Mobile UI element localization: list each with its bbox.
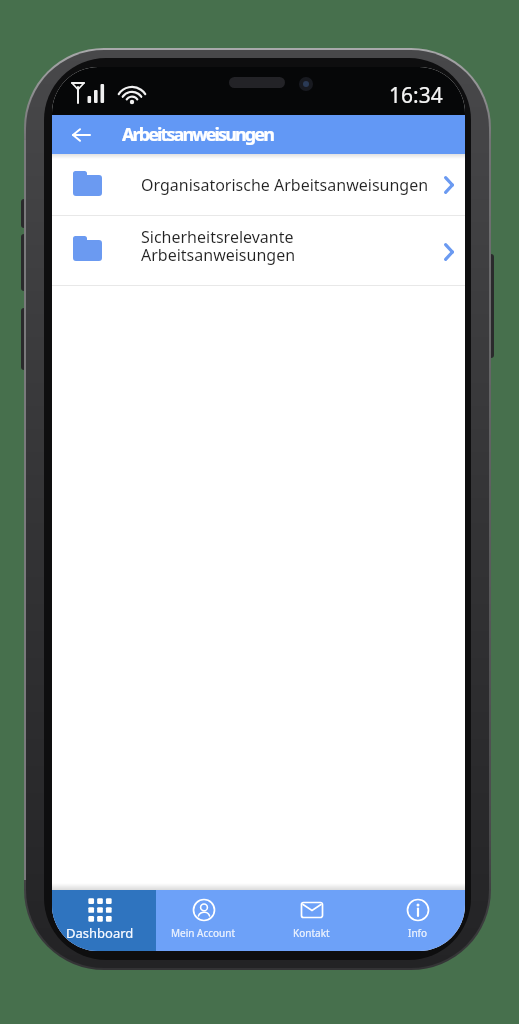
staticText: 16:34	[389, 81, 443, 110]
button[interactable]: Sicherheitsrelevante Arbeitsanweisungen	[52, 216, 465, 285]
staticText: Mein Account	[171, 926, 236, 940]
staticText: Kontakt	[293, 926, 330, 940]
button[interactable]: Kontakt	[259, 890, 362, 951]
staticText: Organisatorische Arbeitsanweisungen	[141, 174, 429, 196]
button[interactable]: Info	[362, 890, 465, 951]
staticText: Dashboard	[66, 924, 134, 942]
button[interactable]: Organisatorische Arbeitsanweisungen	[52, 154, 465, 215]
button[interactable]: Mein Account	[156, 890, 259, 951]
button[interactable]	[62, 120, 100, 149]
button[interactable]: Dashboard	[52, 890, 156, 951]
staticText: Sicherheitsrelevante Arbeitsanweisungen	[141, 226, 296, 266]
staticText: Arbeitsanweisungen	[122, 122, 273, 147]
staticText: Info	[408, 926, 428, 940]
